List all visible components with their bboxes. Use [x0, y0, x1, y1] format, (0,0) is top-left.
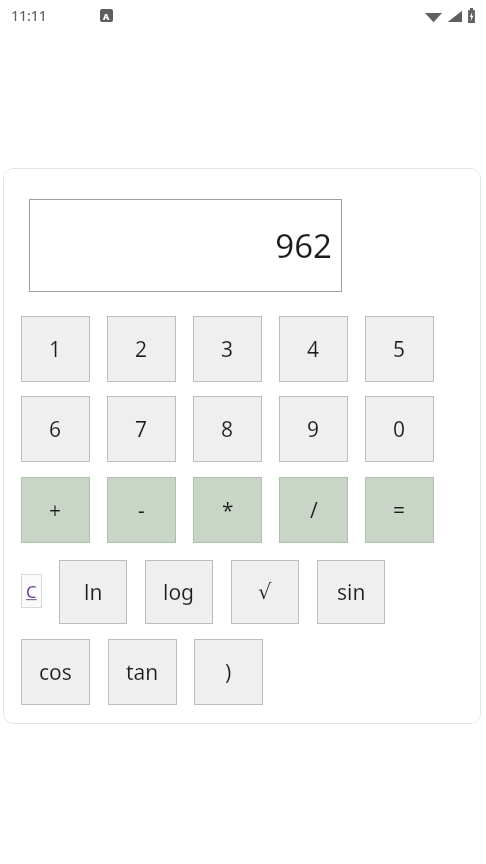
staticText: 1 — [49, 335, 62, 364]
staticText: 0 — [393, 415, 406, 444]
button[interactable]: 2 — [107, 316, 176, 382]
button[interactable]: tan — [108, 639, 177, 705]
staticText: sin — [337, 578, 366, 607]
staticText: log — [163, 578, 195, 607]
button[interactable]: / — [279, 477, 348, 543]
button[interactable]: log — [145, 560, 213, 624]
staticText: 7 — [135, 415, 148, 444]
button[interactable]: ln — [59, 560, 127, 624]
button[interactable]: √ — [231, 560, 299, 624]
button[interactable]: 8 — [193, 396, 262, 462]
button[interactable]: sin — [317, 560, 385, 624]
staticText: 2 — [135, 335, 148, 364]
staticText: = — [393, 496, 406, 525]
staticText: 4 — [307, 335, 320, 364]
staticText: + — [49, 496, 62, 525]
button[interactable]: + — [21, 477, 90, 543]
staticText: - — [138, 496, 145, 525]
button[interactable]: 7 — [107, 396, 176, 462]
button[interactable]: = — [365, 477, 434, 543]
staticText: / — [310, 496, 318, 525]
staticText: √ — [258, 580, 272, 604]
staticText: 9 — [307, 415, 320, 444]
button[interactable]: 0 — [365, 396, 434, 462]
staticText: * — [222, 496, 234, 525]
button[interactable]: ) — [194, 639, 263, 705]
button[interactable]: cos — [21, 639, 90, 705]
button[interactable]: 3 — [193, 316, 262, 382]
button[interactable]: - — [107, 477, 176, 543]
staticText: cos — [39, 658, 72, 687]
staticText: 8 — [221, 415, 234, 444]
staticText: 11:11 — [11, 6, 47, 25]
button[interactable]: * — [193, 477, 262, 543]
button[interactable]: 6 — [21, 396, 90, 462]
button[interactable]: 9 — [279, 396, 348, 462]
staticText: C — [26, 580, 37, 603]
staticText: ln — [84, 578, 103, 607]
button[interactable]: 1 — [21, 316, 90, 382]
staticText: 3 — [221, 335, 234, 364]
staticText: tan — [126, 658, 159, 687]
button[interactable]: Clear — [21, 574, 42, 608]
staticText: 962 — [275, 223, 332, 268]
staticText: A — [103, 10, 110, 22]
button[interactable]: 5 — [365, 316, 434, 382]
staticText: ) — [225, 658, 232, 687]
staticText: 6 — [49, 415, 62, 444]
staticText: 5 — [393, 335, 406, 364]
button[interactable]: 4 — [279, 316, 348, 382]
